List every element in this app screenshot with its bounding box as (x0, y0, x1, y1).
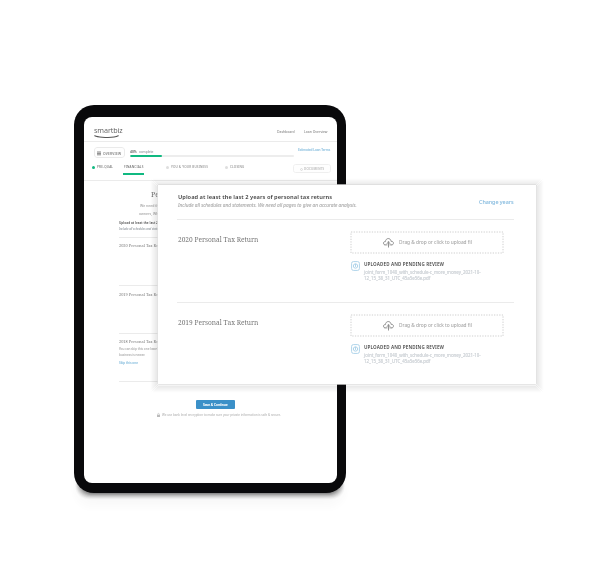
staticText: smartbiz (94, 125, 123, 135)
button[interactable]: FINANCIALS (123, 165, 144, 175)
staticText: joint_form_1040_with_schedule-c_more_mon… (364, 269, 481, 281)
staticText: 2018 Personal Tax Return (119, 339, 167, 344)
button[interactable]: Drag & drop or click to upload fil (351, 315, 503, 336)
button[interactable]: DOCUMENTS (293, 164, 331, 173)
staticText: CLOSING (230, 165, 245, 169)
staticText: business is newer. (119, 353, 145, 357)
button[interactable]: CLOSING (225, 165, 245, 173)
staticText: UPLOADED AND PENDING REVIEW (364, 261, 445, 267)
button[interactable]: Estimated Loan Terms (298, 148, 331, 152)
staticText: Drag & drop or click to upload fil (399, 322, 472, 329)
staticText: You can skip this one (won't hurt) if yo… (119, 347, 178, 351)
staticText: Include all schedules and statements. We… (178, 202, 357, 208)
staticText: PRE-QUAL (97, 165, 114, 169)
button[interactable]: Skip this one (119, 361, 139, 365)
staticText: DOCUMENTS (304, 167, 325, 171)
button[interactable]: Change years (479, 198, 514, 205)
staticText: OVERVIEW (103, 151, 122, 155)
staticText: 2019 Personal Tax Return (178, 318, 351, 327)
button[interactable]: YOU & YOUR BUSINESS (166, 165, 209, 173)
staticText: UPLOADED AND PENDING REVIEW (364, 344, 445, 350)
staticText: Upload at least the last 2 years of pers… (119, 221, 205, 225)
other: Uploaded file (351, 261, 360, 271)
button[interactable]: Loan Overview (304, 129, 328, 134)
staticText: complete (139, 149, 154, 153)
staticText: owners, Why do we need this and how will… (139, 211, 236, 216)
button[interactable]: Dashboard (277, 129, 295, 134)
staticText: We need the personal tax returns for all… (140, 203, 235, 208)
staticText: 2020 Personal Tax Return (119, 243, 167, 248)
button[interactable]: Save & Continue (196, 400, 235, 409)
staticText: YOU & YOUR BUSINESS (171, 165, 209, 169)
button[interactable]: PRE-QUAL (92, 165, 114, 173)
staticText: We use bank level encryption to make sur… (162, 413, 282, 417)
staticText: Save & Continue (203, 403, 228, 407)
button[interactable]: Drag & drop or click to upload fil (351, 232, 503, 253)
button[interactable]: OVERVIEW (94, 147, 125, 158)
other: Uploaded file (351, 344, 360, 354)
staticText: Personal Tax Returns (151, 190, 223, 200)
staticText: 2019 Personal Tax Return (119, 292, 167, 297)
staticText: Upload at least the last 2 years of pers… (178, 193, 333, 201)
staticText: FINANCIALS (124, 165, 144, 169)
staticText: 2020 Personal Tax Return (178, 235, 351, 244)
staticText: Drag & drop or click to upload fil (399, 239, 472, 246)
staticText: Include all schedules and statements. We… (119, 227, 192, 231)
staticText: 40% (130, 149, 137, 153)
staticText: joint_form_1040_with_schedule-c_more_mon… (364, 352, 481, 364)
